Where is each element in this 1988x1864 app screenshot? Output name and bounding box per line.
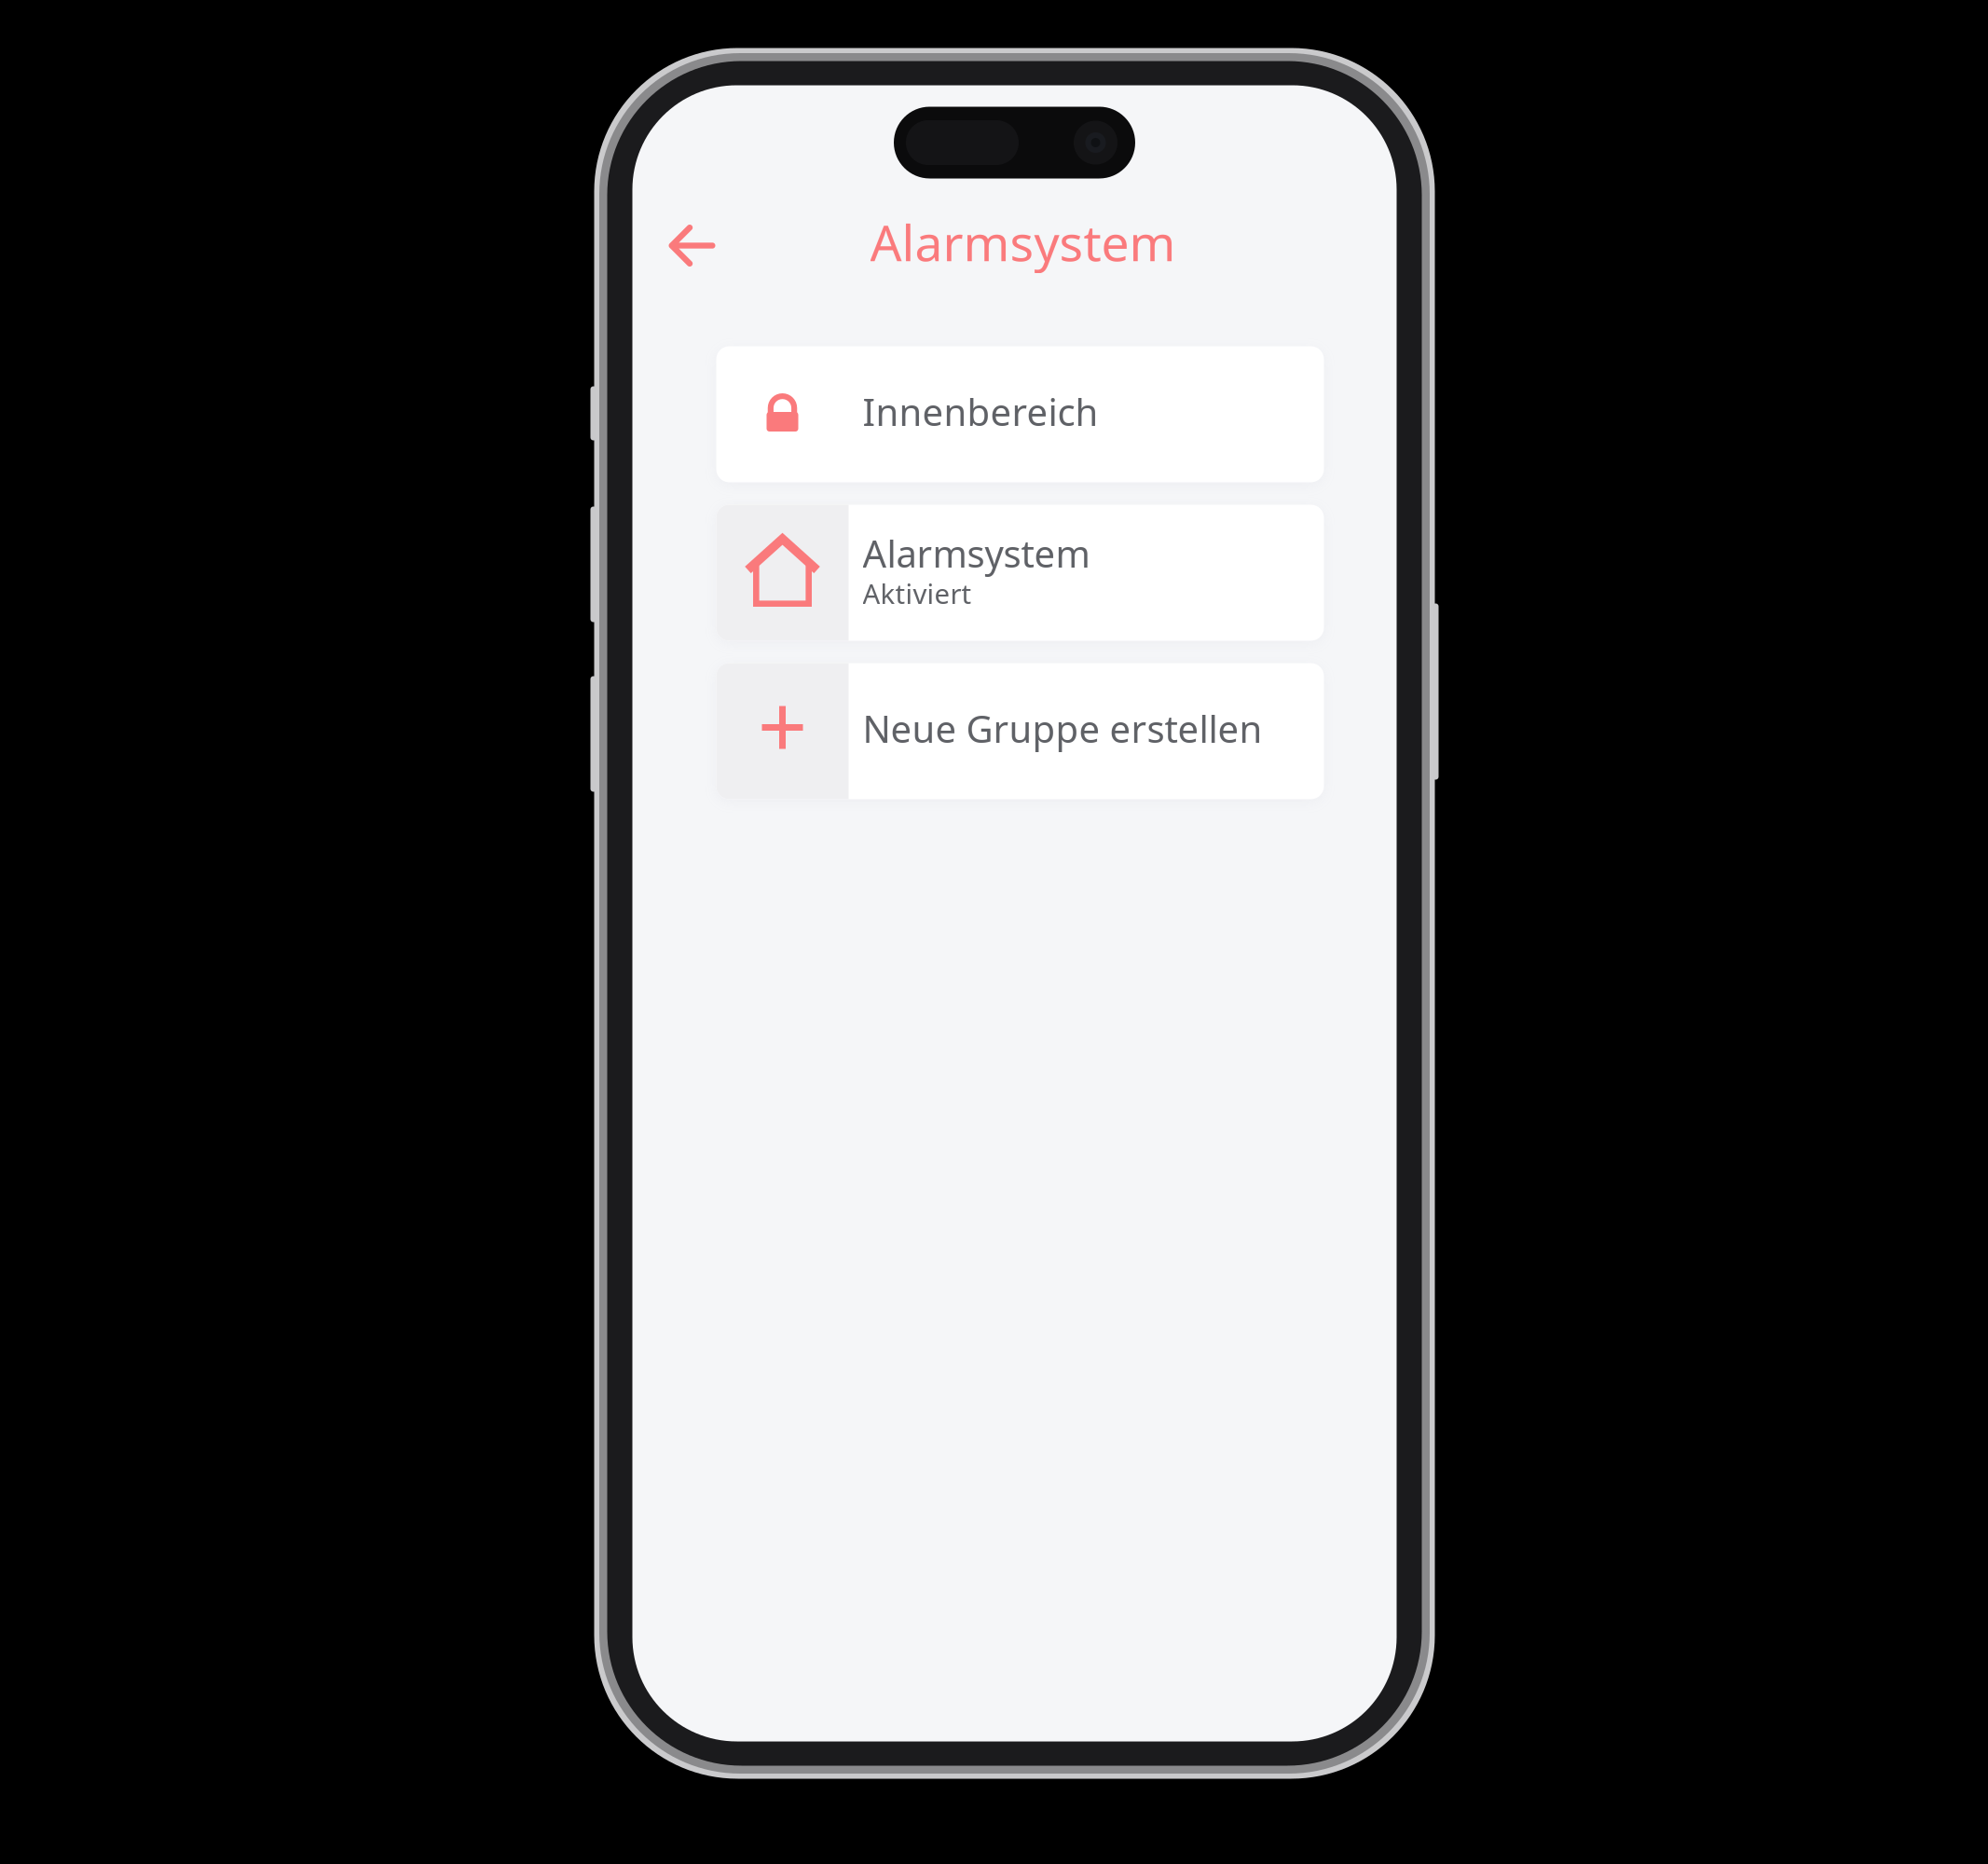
staticText: Alarmsystem <box>870 209 1176 275</box>
button[interactable]: Alarmsystem <box>716 505 1324 641</box>
button[interactable]: Neue Gruppe erstellen <box>716 663 1324 799</box>
staticText: Innenbereich <box>863 387 1098 436</box>
button[interactable]: Back <box>649 205 735 290</box>
staticText: Alarmsystem <box>863 528 1090 578</box>
staticText: Neue Gruppe erstellen <box>863 704 1262 753</box>
button[interactable]: Innenbereich <box>716 346 1324 482</box>
staticText: Aktiviert <box>863 575 972 611</box>
